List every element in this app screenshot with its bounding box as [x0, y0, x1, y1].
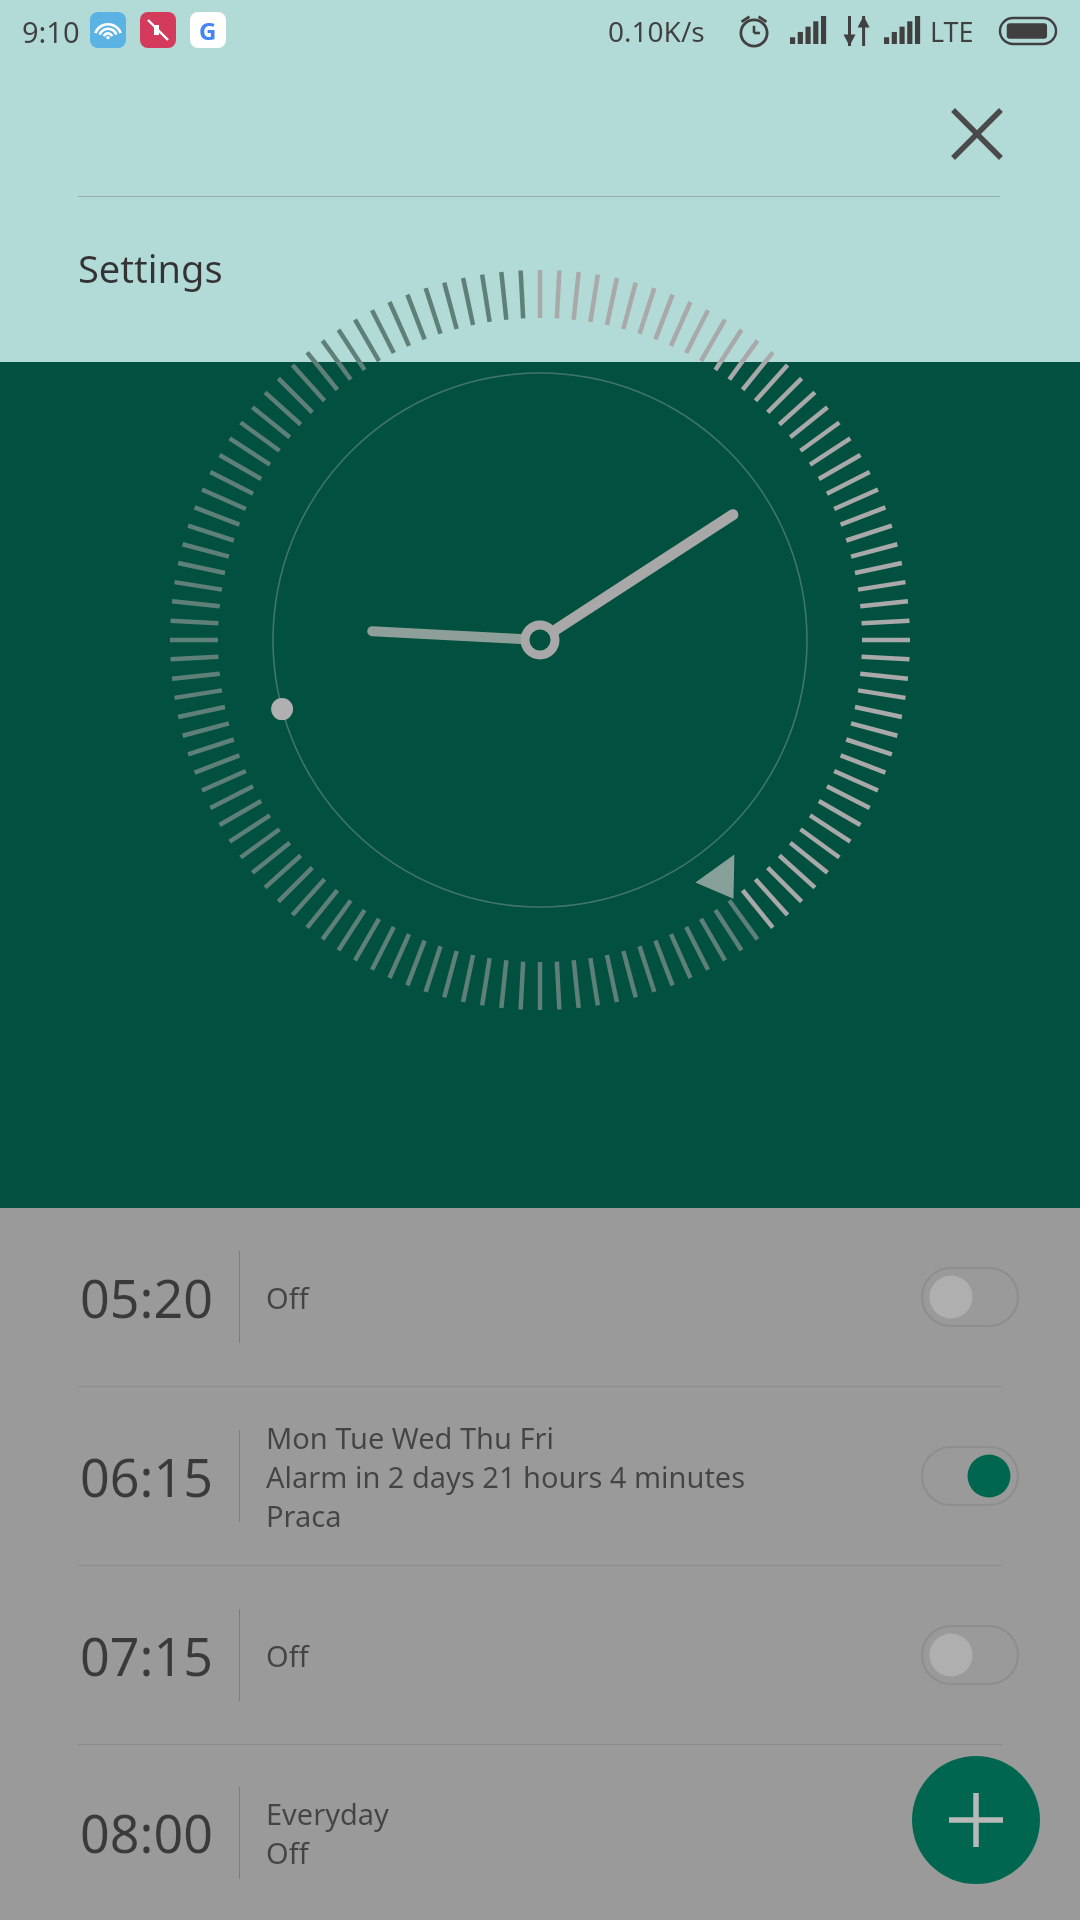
button[interactable]: Alarm off	[922, 1804, 1018, 1862]
staticText: Alarm in 2 days 21 hours 4 minutes	[266, 1457, 746, 1496]
button[interactable]: 06:15	[0, 1387, 1080, 1565]
staticText: LTE	[930, 13, 974, 50]
button[interactable]: 07:15	[0, 1566, 1080, 1744]
button[interactable]: Alarm off	[922, 1268, 1018, 1326]
staticText: Mon Tue Wed Thu Fri	[266, 1418, 554, 1457]
button[interactable]: Close	[938, 95, 1016, 173]
button[interactable]: Alarm on	[922, 1447, 1018, 1505]
staticText: 07:15	[80, 1620, 213, 1691]
button[interactable]: Add alarm	[912, 1756, 1040, 1884]
button[interactable]: 05:20	[0, 1208, 1080, 1386]
staticText: 08:00	[80, 1797, 213, 1868]
staticText: 0.10K/s	[608, 12, 705, 50]
staticText: 06:15	[80, 1441, 213, 1512]
staticText: 05:20	[80, 1262, 213, 1333]
button[interactable]: Alarm off	[922, 1626, 1018, 1684]
staticText: G	[199, 14, 217, 47]
staticText: Praca	[266, 1496, 342, 1535]
staticText: Off	[266, 1278, 309, 1317]
staticText: 9:10	[22, 12, 80, 51]
button[interactable]: 08:00	[0, 1745, 1080, 1920]
staticText: Everyday	[266, 1794, 389, 1833]
staticText: Off	[266, 1636, 309, 1675]
staticText: Off	[266, 1833, 309, 1872]
staticText: Settings	[78, 242, 223, 294]
